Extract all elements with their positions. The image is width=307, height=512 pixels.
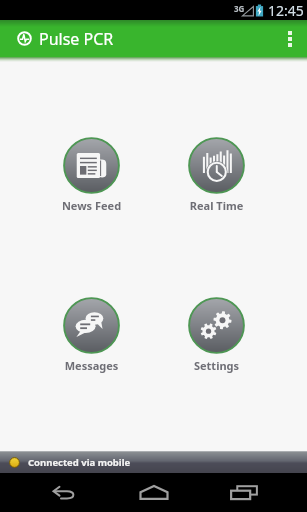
staticText: 3G <box>234 3 245 14</box>
staticText: Real Time <box>178 198 255 213</box>
staticText: Connected via mobile <box>28 456 131 469</box>
button[interactable]: Back <box>43 473 83 512</box>
button[interactable]: Settings <box>178 297 255 373</box>
button[interactable]: News Feed <box>53 137 130 213</box>
staticText: News Feed <box>53 198 130 213</box>
button[interactable]: Real Time <box>178 137 255 213</box>
staticText: 12:45 <box>268 1 304 20</box>
button[interactable]: Recent apps <box>224 473 264 512</box>
staticText: Settings <box>178 358 255 373</box>
button[interactable]: More options <box>273 20 307 57</box>
button[interactable]: Home <box>134 473 174 512</box>
button[interactable]: Messages <box>53 297 130 373</box>
staticText: Pulse PCR <box>39 28 114 50</box>
staticText: Messages <box>53 358 130 373</box>
